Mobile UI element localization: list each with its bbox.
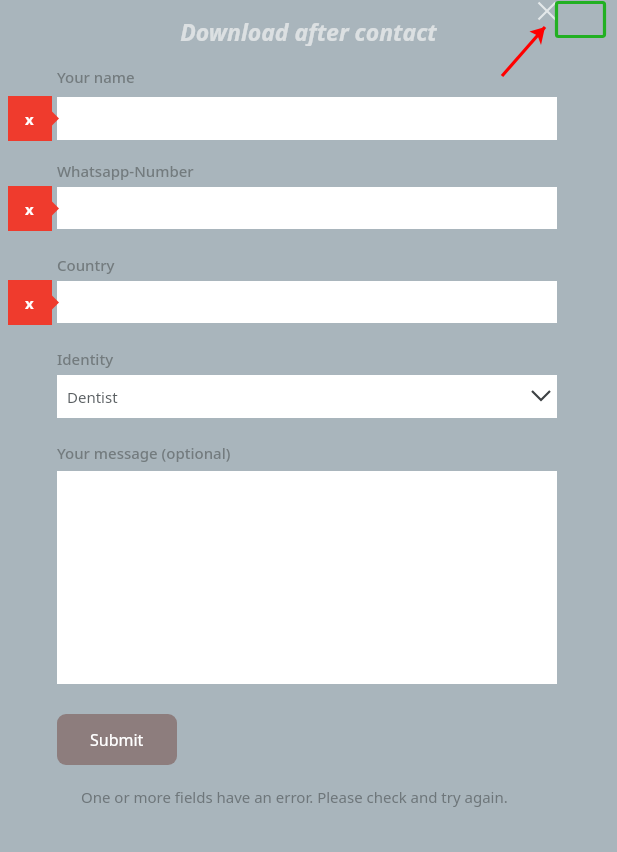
staticText: Submit xyxy=(90,729,144,751)
staticText: Your message (optional) xyxy=(57,443,231,463)
staticText: Your name xyxy=(57,67,135,87)
staticText: Whatsapp-Number xyxy=(57,161,194,181)
staticText: x xyxy=(25,199,34,219)
staticText: x xyxy=(25,293,34,313)
button[interactable]: Dentist xyxy=(57,375,557,418)
button[interactable]: Close xyxy=(533,0,561,25)
staticText: Download after contact xyxy=(180,16,437,46)
staticText: Country xyxy=(57,255,115,275)
other: Field error xyxy=(8,186,60,231)
other: Field error xyxy=(8,96,60,141)
staticText: Dentist xyxy=(67,387,118,407)
other: Field error xyxy=(8,280,60,325)
staticText: One or more fields have an error. Please… xyxy=(81,787,508,807)
button[interactable]: Submit xyxy=(57,714,177,765)
staticText: Identity xyxy=(57,349,114,369)
staticText: x xyxy=(25,109,34,129)
